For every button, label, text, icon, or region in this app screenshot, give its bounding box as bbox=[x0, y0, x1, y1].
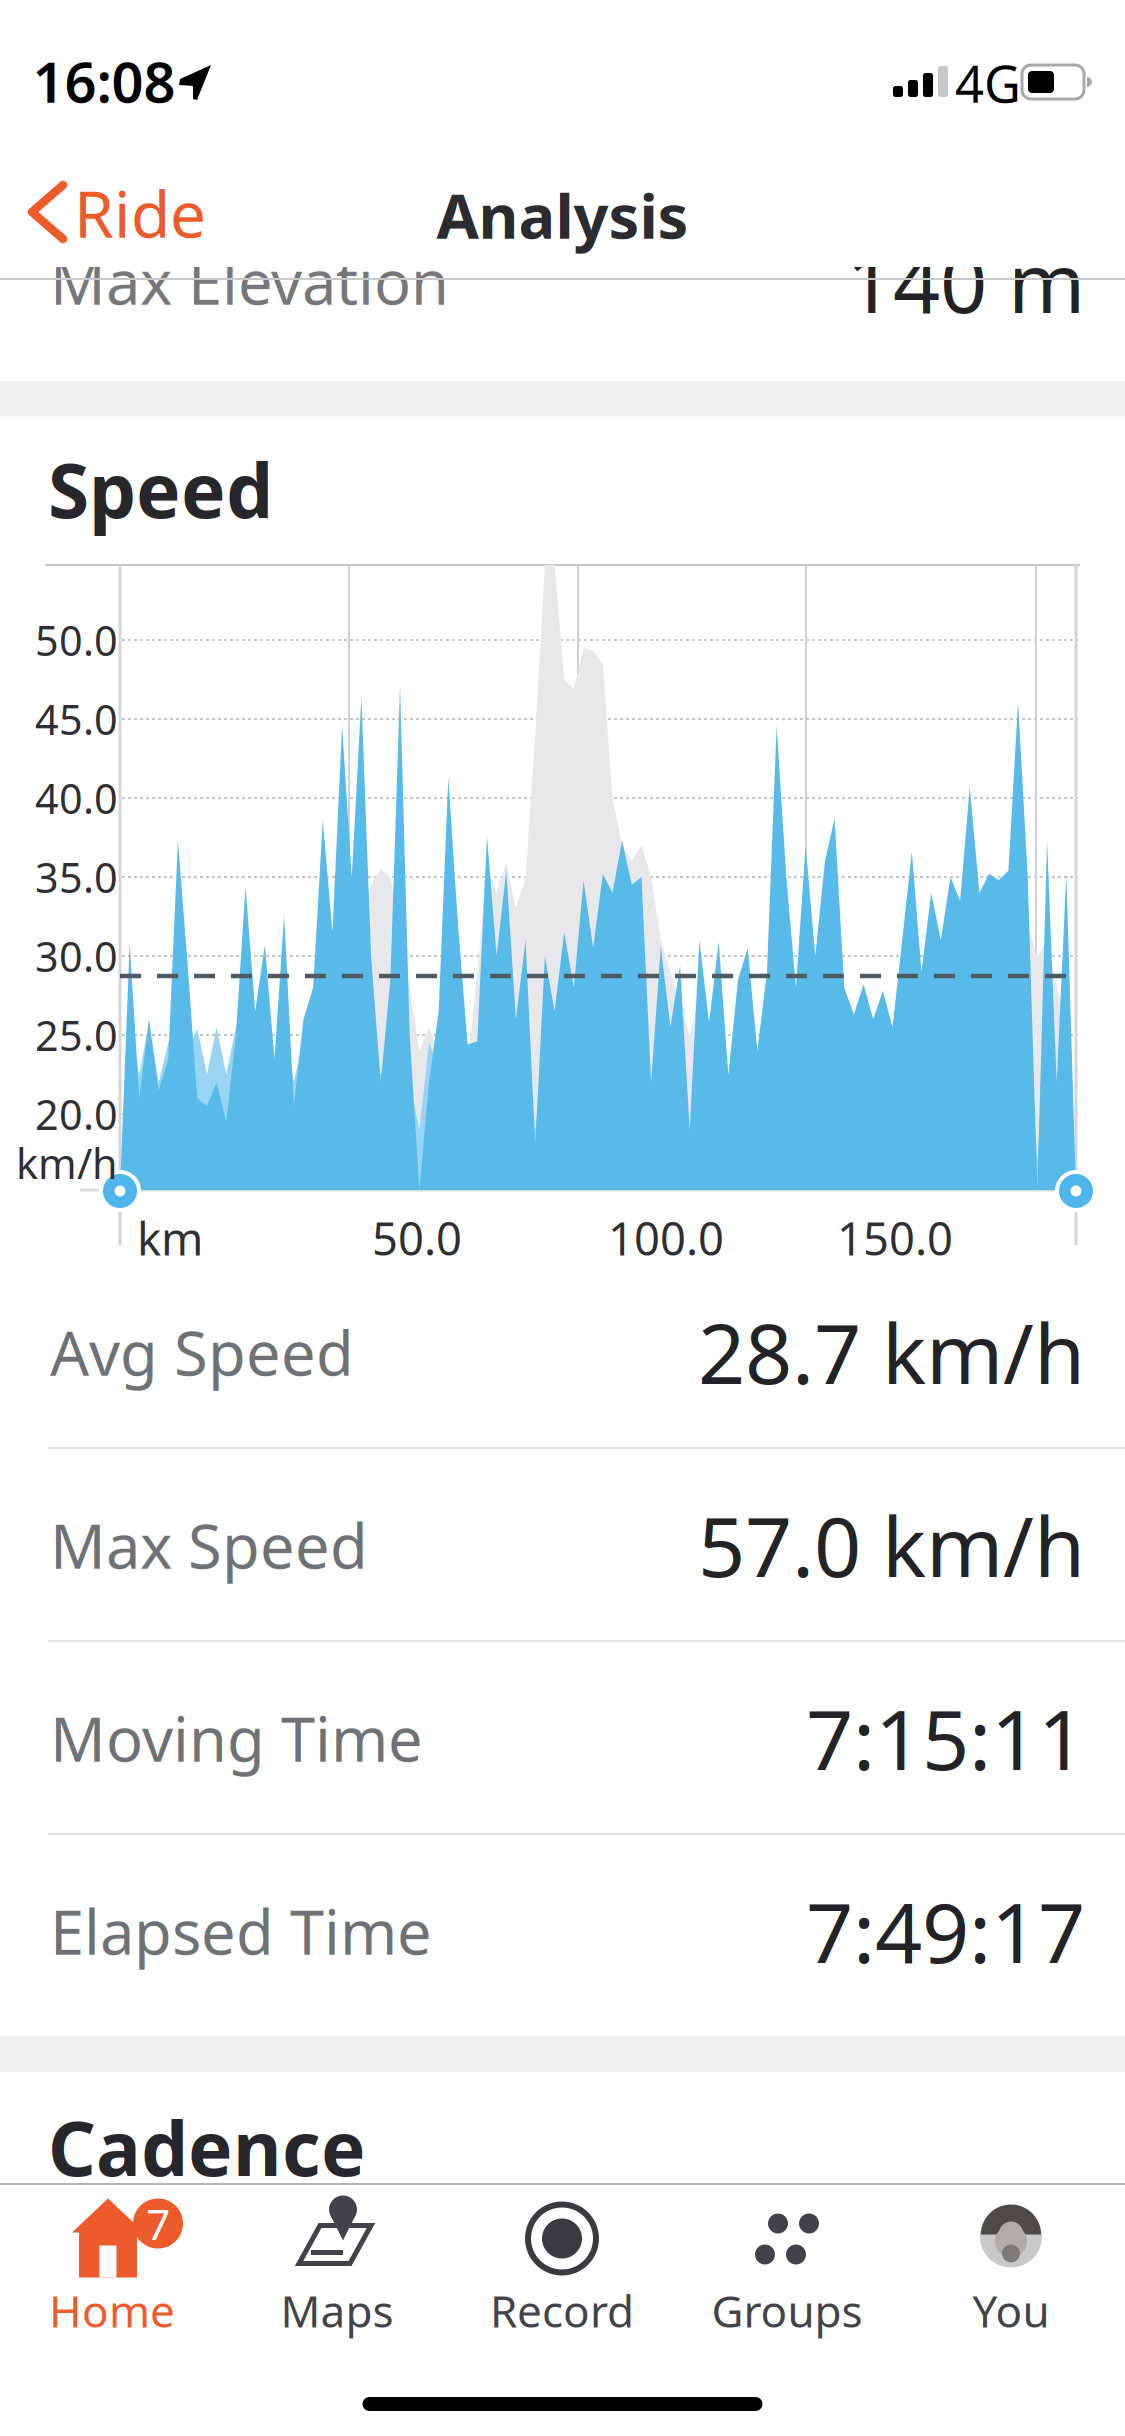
staticText: 140 m bbox=[846, 226, 1085, 336]
staticText: 20.0 bbox=[35, 1087, 118, 1141]
staticText: Home bbox=[49, 2281, 175, 2340]
staticText: Analysis bbox=[436, 174, 688, 256]
staticText: 57.0 km/h bbox=[698, 1490, 1085, 1600]
staticText: Maps bbox=[280, 2281, 393, 2340]
staticText: 100.0 bbox=[608, 1208, 724, 1268]
staticText: 150.0 bbox=[837, 1208, 953, 1268]
staticText: Avg Speed bbox=[50, 1311, 354, 1393]
staticText: 35.0 bbox=[35, 850, 118, 904]
staticText: Max Speed bbox=[50, 1504, 368, 1586]
button[interactable]: You bbox=[900, 2183, 1125, 2436]
staticText: km/h bbox=[16, 1136, 118, 1190]
staticText: Groups bbox=[711, 2281, 862, 2340]
staticText: 4G bbox=[955, 49, 1021, 117]
staticText: 50.0 bbox=[35, 613, 118, 667]
button[interactable]: Ride bbox=[10, 160, 220, 268]
staticText: 28.7 km/h bbox=[698, 1297, 1085, 1407]
staticText: Speed bbox=[48, 439, 273, 539]
staticText: Moving Time bbox=[50, 1697, 423, 1779]
staticText: Elapsed Time bbox=[50, 1890, 432, 1972]
staticText: 40.0 bbox=[35, 771, 118, 825]
staticText: 7 bbox=[146, 2195, 170, 2252]
staticText: Ride bbox=[74, 170, 206, 255]
button[interactable]: Record bbox=[450, 2183, 675, 2436]
staticText: Record bbox=[490, 2281, 634, 2340]
button[interactable]: 7 bbox=[0, 2183, 225, 2436]
staticText: 30.0 bbox=[35, 929, 118, 983]
button[interactable]: Maps bbox=[225, 2183, 450, 2436]
staticText: 16:08 bbox=[32, 44, 175, 118]
staticText: 45.0 bbox=[35, 692, 118, 746]
staticText: km bbox=[137, 1208, 203, 1268]
staticText: Max Elevation bbox=[50, 240, 449, 322]
staticText: 7:49:17 bbox=[806, 1876, 1085, 1986]
staticText: 25.0 bbox=[35, 1008, 118, 1062]
staticText: 50.0 bbox=[372, 1208, 462, 1268]
button[interactable]: Groups bbox=[675, 2183, 900, 2436]
staticText: You bbox=[972, 2281, 1049, 2340]
staticText: 7:15:11 bbox=[806, 1683, 1085, 1793]
staticText: Cadence bbox=[48, 2097, 366, 2197]
